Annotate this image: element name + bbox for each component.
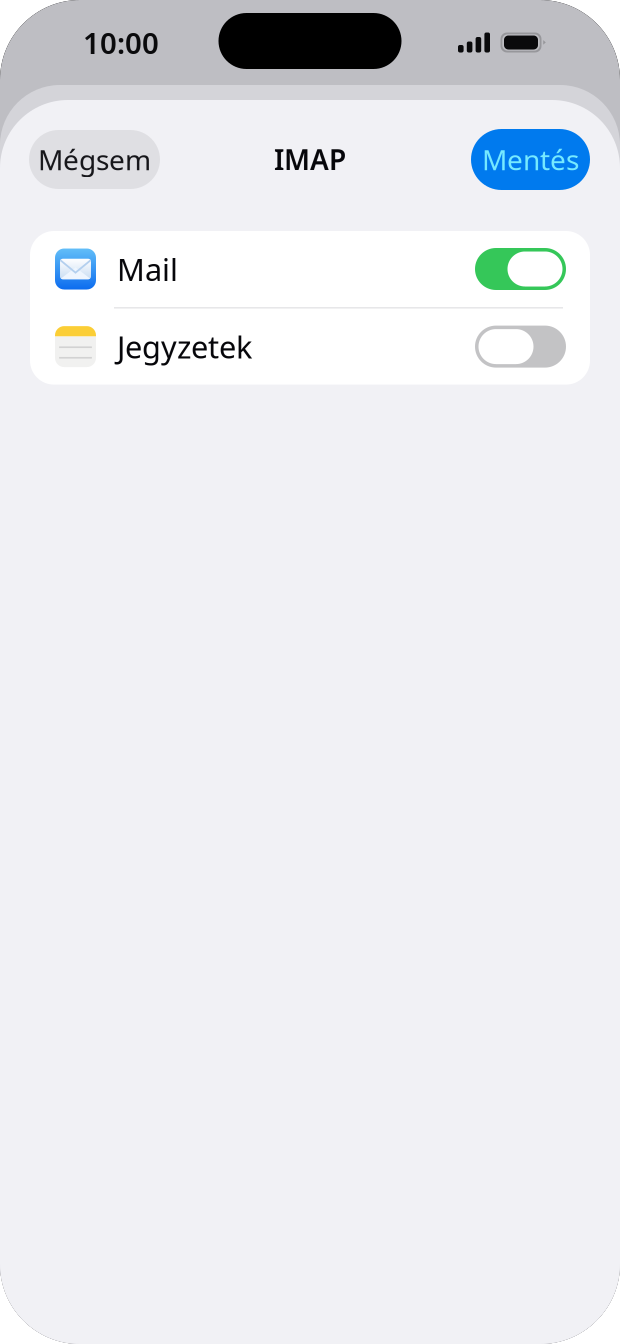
staticText: Jegyzetek [117, 326, 252, 367]
button[interactable]: Mail [30, 231, 590, 307]
button[interactable]: Mégsem [29, 130, 160, 189]
staticText: Mentés [482, 141, 579, 178]
staticText: Mégsem [38, 141, 151, 178]
button[interactable]: Jegyzetek [30, 309, 590, 385]
staticText: Mail [117, 249, 178, 289]
staticText: IMAP [274, 141, 346, 178]
button[interactable]: Mentés [471, 129, 590, 190]
staticText: 10:00 [83, 23, 159, 62]
